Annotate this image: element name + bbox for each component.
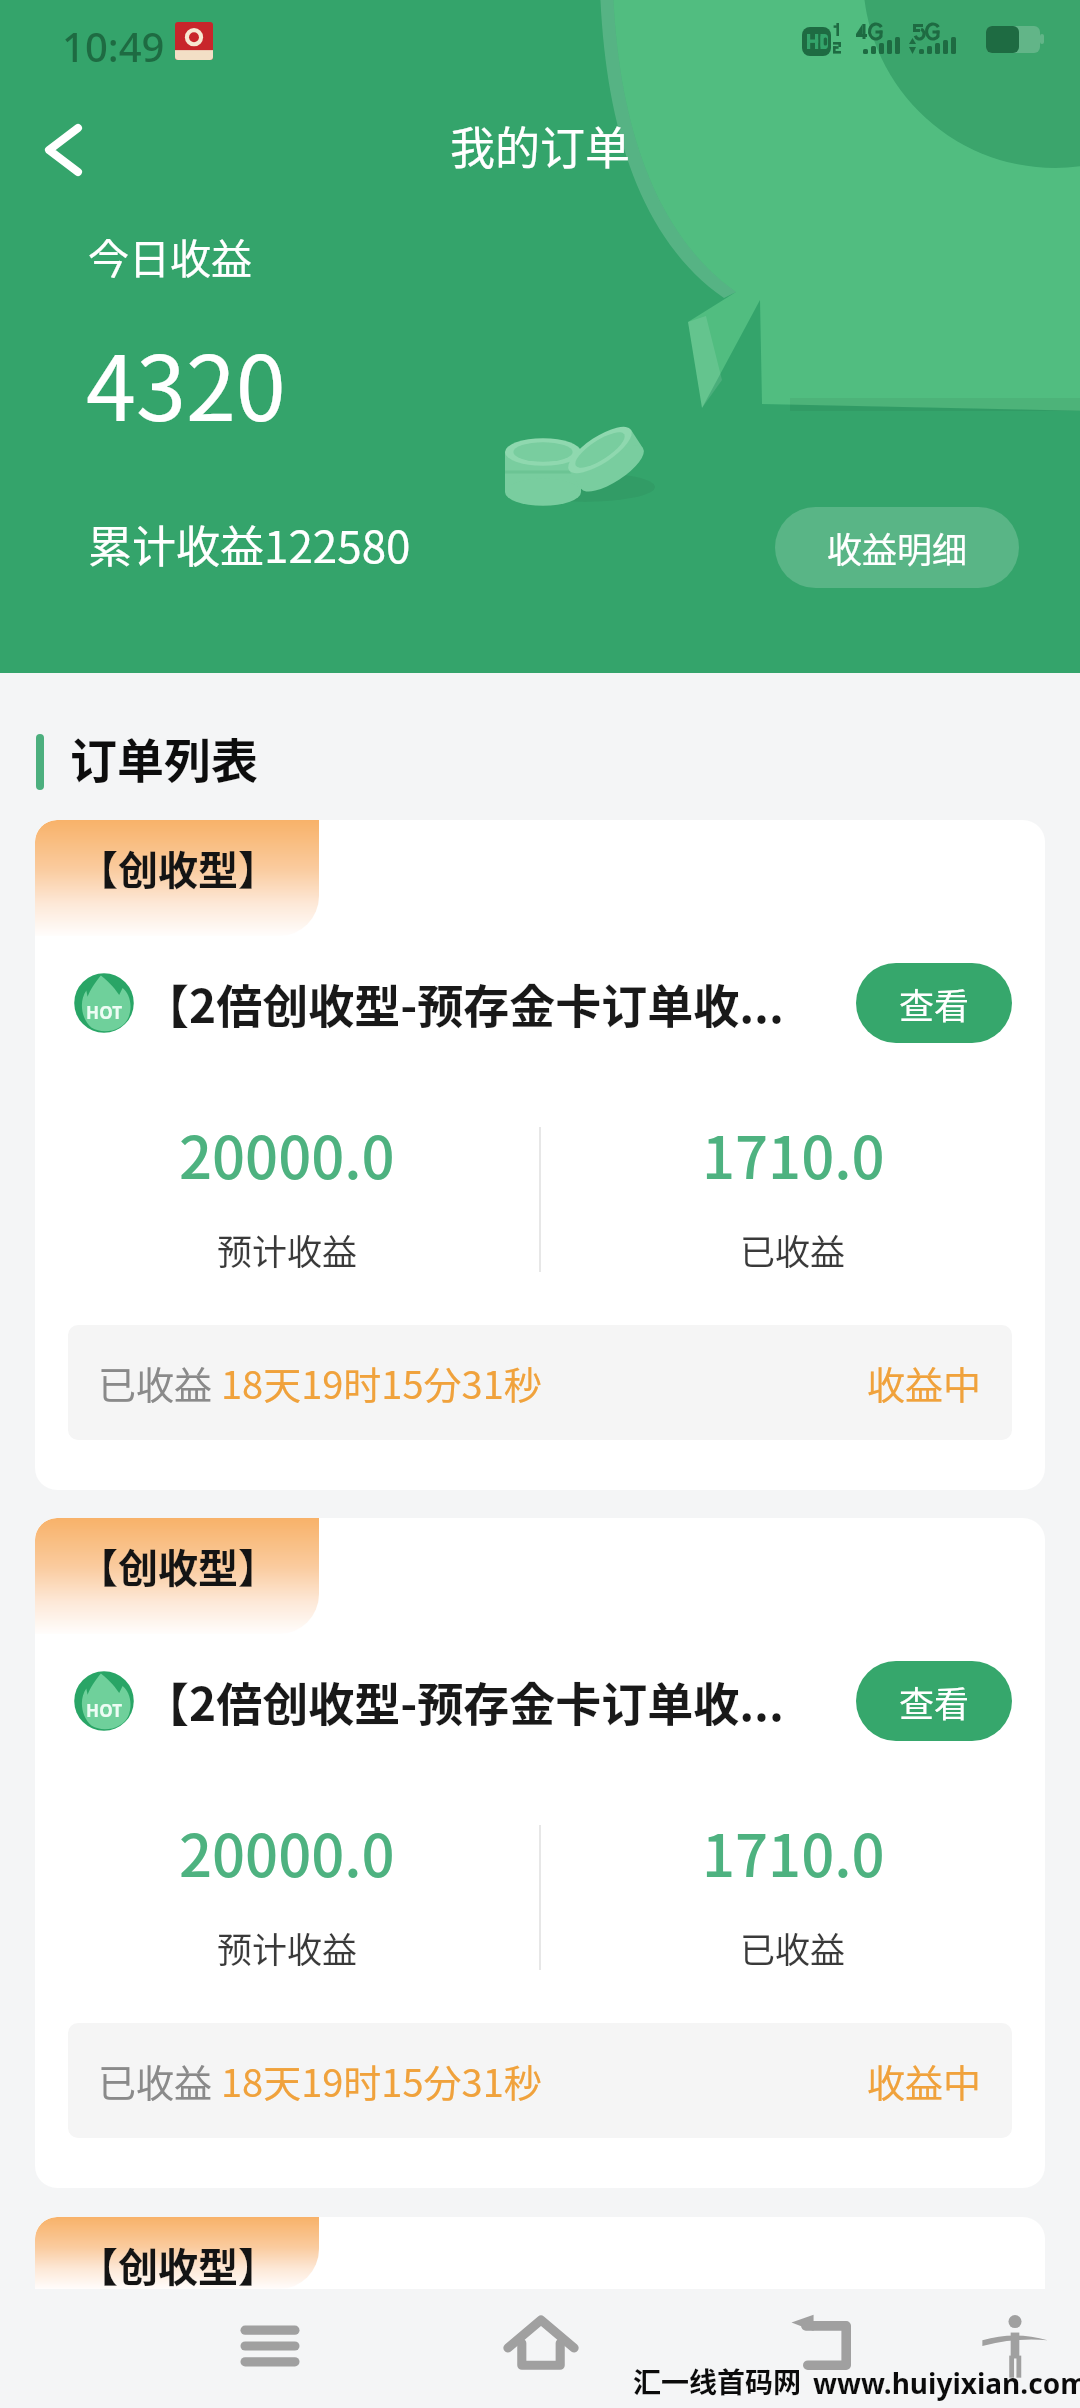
staticText: HOT <box>86 1699 123 1722</box>
staticText: 查看 <box>899 1676 970 1727</box>
staticText: 已收益 <box>740 1224 846 1275</box>
button[interactable]: 查看 <box>856 1661 1012 1741</box>
staticText: 1710.0 <box>702 1112 885 1196</box>
staticText: 累计收益122580 <box>88 512 411 576</box>
staticText: 20000.0 <box>179 1810 395 1894</box>
staticText: 10:49 <box>62 19 165 73</box>
staticText: 预计收益 <box>217 1922 358 1973</box>
staticText: HOT <box>86 1001 123 1024</box>
button[interactable]: Home <box>493 2298 589 2394</box>
button[interactable]: Back <box>20 100 120 200</box>
button[interactable]: 【创收型】 <box>35 1518 1045 2188</box>
button[interactable]: 查看 <box>856 963 1012 1043</box>
staticText: 订单列表 <box>70 723 258 791</box>
staticText: 收益明细 <box>827 522 968 573</box>
staticText: 汇一线首码网 <box>633 2361 802 2402</box>
button[interactable]: 【创收型】 <box>35 820 1045 1490</box>
staticText: 【创收型】 <box>78 839 278 897</box>
staticText: www.huiyixian.com <box>813 2364 1080 2402</box>
staticText: 【2倍创收型-预存金卡订单收... <box>143 1668 844 1735</box>
staticText: 预计收益 <box>217 1224 358 1275</box>
staticText: 收益中 <box>867 1355 982 1410</box>
staticText: 1710.0 <box>702 1810 885 1894</box>
staticText: 【2倍创收型-预存金卡订单收... <box>143 970 844 1037</box>
button[interactable]: Recents <box>222 2298 318 2394</box>
staticText: 我的订单 <box>450 113 631 178</box>
staticText: 18天19时15分31秒 <box>221 1355 542 1410</box>
staticText: 已收益 <box>740 1922 846 1973</box>
staticText: 【创收型】 <box>78 2236 278 2289</box>
staticText: 已收益 <box>98 1355 221 1410</box>
staticText: 已收益 <box>98 2053 221 2108</box>
staticText: 收益中 <box>867 2053 982 2108</box>
button[interactable]: 收益明细 <box>775 507 1019 588</box>
staticText: 【创收型】 <box>78 1537 278 1595</box>
button[interactable]: Accessibility <box>967 2298 1063 2394</box>
staticText: 今日收益 <box>88 226 252 285</box>
staticText: 查看 <box>899 978 970 1029</box>
staticText: 18天19时15分31秒 <box>221 2053 542 2108</box>
button[interactable]: 【创收型】 <box>35 2217 1045 2289</box>
button[interactable]: Back <box>779 2298 875 2394</box>
staticText: 4320 <box>86 317 286 447</box>
staticText: 20000.0 <box>179 1112 395 1196</box>
